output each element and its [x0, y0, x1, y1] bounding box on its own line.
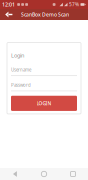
button[interactable]: Recent apps	[58, 168, 87, 180]
button[interactable]: Home	[29, 168, 58, 180]
staticText: 12:01	[2, 1, 15, 8]
button[interactable]: LOGIN	[11, 96, 77, 111]
staticText: 57%	[69, 1, 79, 8]
staticText: Login	[11, 52, 24, 59]
staticText: Username	[11, 67, 31, 73]
button[interactable]: Back	[0, 168, 29, 180]
staticText: Password	[11, 82, 31, 88]
button[interactable]: Back	[0, 9, 18, 20]
staticText: LOGIN	[36, 100, 51, 106]
staticText: ScanBox Demo Scan	[21, 11, 69, 18]
